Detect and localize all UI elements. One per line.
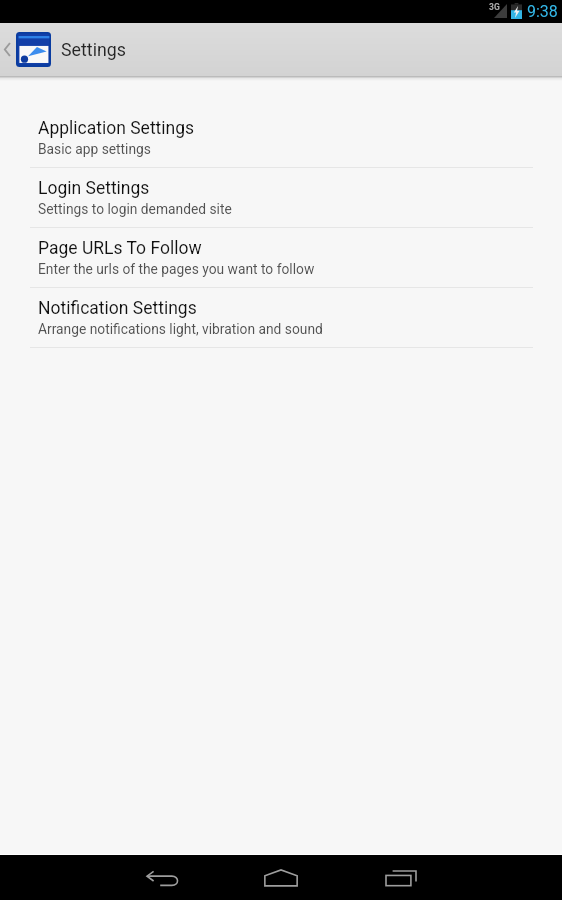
staticText: Enter the urls of the pages you want to … [38,261,315,277]
staticText: Arrange notifications light, vibration a… [38,321,323,337]
button[interactable]: Recent apps [361,855,441,900]
button[interactable]: Notification Settings [0,288,562,348]
staticText: Settings [61,39,126,60]
button[interactable]: Home [241,855,321,900]
staticText: 3G [489,2,500,12]
staticText: Login Settings [38,178,150,199]
staticText: Settings to login demanded site [38,201,232,217]
staticText: Basic app settings [38,141,151,157]
button[interactable]: Login Settings [0,168,562,228]
button[interactable]: Application Settings [0,108,562,168]
staticText: 9:38 [527,2,558,21]
button[interactable]: Back [122,855,202,900]
staticText: Application Settings [38,118,195,139]
button[interactable]: Page URLs To Follow [0,228,562,288]
staticText: Page URLs To Follow [38,238,202,259]
staticText: Notification Settings [38,298,197,319]
button[interactable]: Navigate up [0,23,61,76]
